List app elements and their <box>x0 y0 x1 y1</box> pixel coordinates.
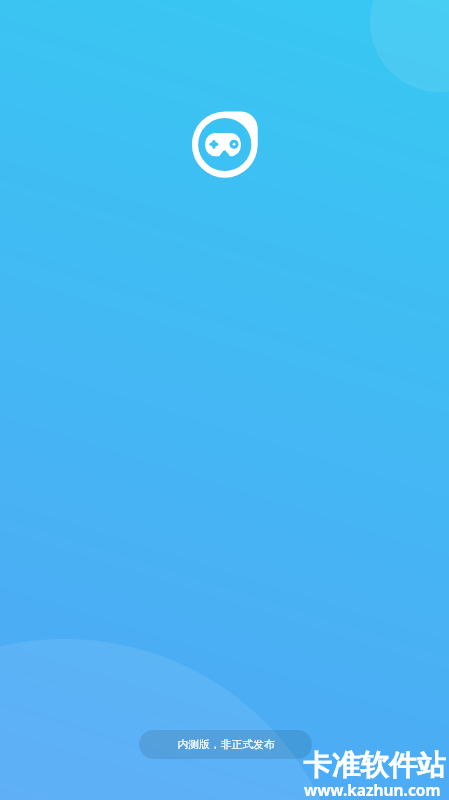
staticText: 卡准软件站 <box>303 748 446 784</box>
staticText: 内测版，非正式发布 <box>177 738 275 752</box>
button[interactable]: 内测版，非正式发布 <box>139 730 312 759</box>
staticText: www.kazhun.com <box>304 780 441 800</box>
